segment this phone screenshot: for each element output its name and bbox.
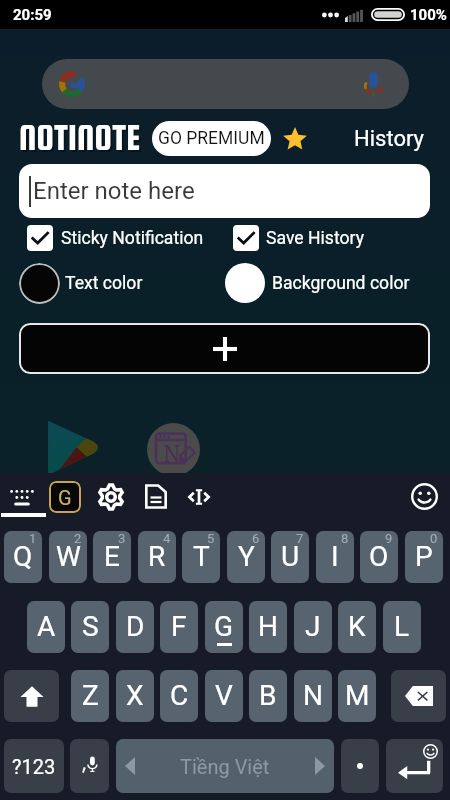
button[interactable]: B xyxy=(249,670,287,722)
button[interactable]: Background color xyxy=(225,262,410,304)
button[interactable]: Sticky Notification xyxy=(27,225,204,251)
button[interactable]: Clipboard xyxy=(145,484,167,509)
button[interactable]: Text color xyxy=(19,262,143,304)
button[interactable]: Rate app xyxy=(282,126,308,151)
button[interactable]: Z xyxy=(71,670,109,722)
staticText: Background color xyxy=(272,273,410,294)
staticText: Tiềng Việt xyxy=(180,755,270,778)
button[interactable]: Text editing xyxy=(186,484,212,510)
button[interactable]: Q xyxy=(4,531,42,583)
staticText: X xyxy=(126,679,144,712)
staticText: History xyxy=(354,126,424,152)
staticText: B xyxy=(259,679,277,712)
button[interactable]: Save History xyxy=(233,225,364,251)
staticText: 1 xyxy=(29,531,37,546)
staticText: Enter note here xyxy=(33,177,195,205)
staticText: K xyxy=(348,610,366,643)
staticText: 6 xyxy=(252,531,260,546)
staticText: E xyxy=(104,540,120,573)
staticText: ?123 xyxy=(12,755,56,778)
button[interactable]: Enter xyxy=(386,739,443,793)
staticText: GO PREMIUM xyxy=(158,128,265,149)
staticText: 0 xyxy=(430,531,438,546)
button[interactable]: R xyxy=(138,531,176,583)
staticText: Save History xyxy=(266,228,364,249)
staticText: M xyxy=(345,679,370,712)
button[interactable]: H xyxy=(249,601,287,653)
button[interactable]: U xyxy=(271,531,309,583)
staticText: 8 xyxy=(341,531,349,546)
staticText: 3 xyxy=(118,531,126,546)
staticText: 5 xyxy=(207,531,215,546)
staticText: J xyxy=(305,610,321,643)
staticText: T xyxy=(193,540,210,573)
button[interactable]: M xyxy=(338,670,376,722)
staticText: V xyxy=(215,679,233,712)
staticText: Z xyxy=(82,679,99,712)
staticText: F xyxy=(171,610,187,643)
staticText: NOTINOTE xyxy=(21,120,143,159)
staticText: Text color xyxy=(65,273,143,294)
staticText: S xyxy=(82,610,99,643)
button[interactable]: Play Store xyxy=(47,420,100,473)
button[interactable] xyxy=(341,739,379,793)
button[interactable]: F xyxy=(160,601,198,653)
staticText: G xyxy=(214,610,234,643)
button[interactable]: G xyxy=(49,481,81,513)
button[interactable]: E xyxy=(93,531,131,583)
staticText: 4 xyxy=(163,531,171,546)
staticText: I xyxy=(331,540,339,573)
staticText: R xyxy=(148,540,166,573)
staticText: P xyxy=(415,540,433,573)
staticText: W xyxy=(56,540,81,573)
button[interactable]: I xyxy=(316,531,354,583)
button[interactable]: O xyxy=(360,531,398,583)
button[interactable]: T xyxy=(182,531,220,583)
button[interactable]: Keyboard layout xyxy=(3,480,41,514)
button[interactable]: A xyxy=(27,601,65,653)
button[interactable]: Google search xyxy=(42,59,409,109)
staticText: N xyxy=(163,437,181,468)
button[interactable]: Voice input xyxy=(70,739,109,793)
button[interactable]: Y xyxy=(227,531,265,583)
staticText: Sticky Notification xyxy=(61,228,204,249)
button[interactable]: K xyxy=(338,601,376,653)
staticText: NOTINOTE xyxy=(19,118,141,157)
button[interactable]: L xyxy=(383,601,421,653)
button[interactable]: Add note xyxy=(19,323,430,374)
staticText: G xyxy=(58,486,72,509)
staticText: Q xyxy=(13,540,33,573)
button[interactable]: V xyxy=(205,670,243,722)
button[interactable]: S xyxy=(71,601,109,653)
button[interactable]: Shift xyxy=(4,670,59,722)
button[interactable]: History xyxy=(346,122,432,156)
staticText: L xyxy=(394,610,410,643)
button[interactable]: X xyxy=(116,670,154,722)
button[interactable]: ?123 xyxy=(4,739,64,793)
staticText: H xyxy=(258,610,278,643)
staticText: O xyxy=(369,540,389,573)
button[interactable]: Notinote app xyxy=(147,423,200,476)
staticText: N xyxy=(303,679,323,712)
button[interactable]: W xyxy=(49,531,87,583)
button[interactable]: J xyxy=(294,601,332,653)
button[interactable]: G xyxy=(205,601,243,653)
staticText: D xyxy=(126,610,145,643)
staticText: C xyxy=(170,679,189,712)
staticText: U xyxy=(281,540,300,573)
button[interactable]: Emoji xyxy=(411,483,438,510)
button[interactable]: N xyxy=(294,670,332,722)
button[interactable]: C xyxy=(160,670,198,722)
staticText: 9 xyxy=(385,531,393,546)
staticText: Y xyxy=(238,540,255,573)
button[interactable]: Settings xyxy=(98,484,124,510)
button[interactable]: Backspace xyxy=(391,670,446,722)
staticText: 20:59 xyxy=(13,6,52,24)
staticText: 2 xyxy=(74,531,82,546)
button[interactable]: Tiềng Việt xyxy=(116,739,334,793)
button[interactable]: GO PREMIUM xyxy=(152,121,271,156)
staticText: A xyxy=(37,610,56,643)
button[interactable]: D xyxy=(116,601,154,653)
button[interactable]: P xyxy=(405,531,443,583)
button[interactable]: Enter note here xyxy=(19,164,430,218)
